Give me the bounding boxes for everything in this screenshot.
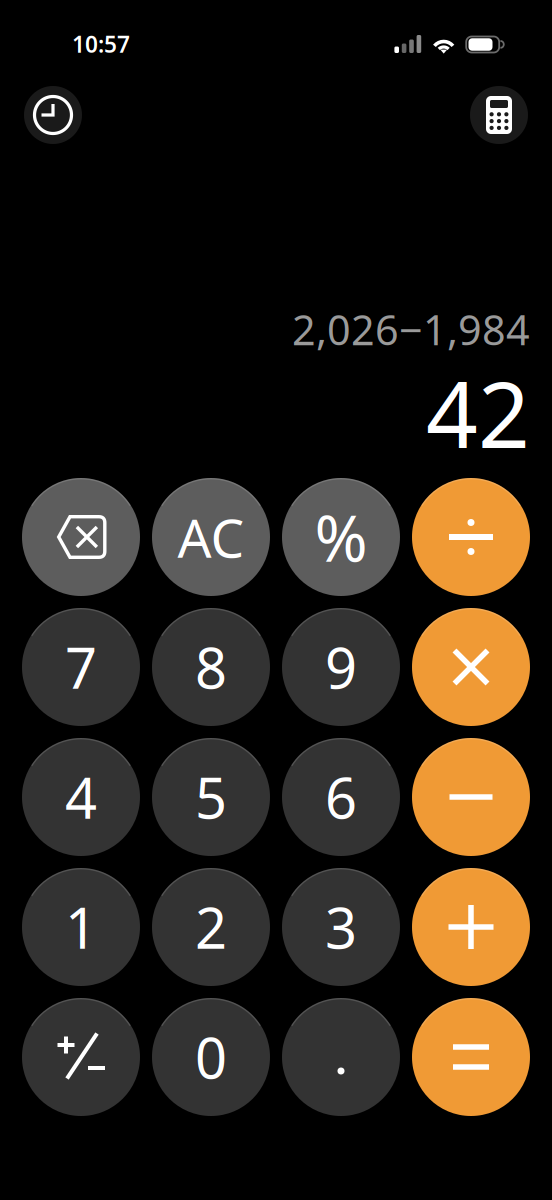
- staticText: 6: [325, 760, 357, 834]
- button[interactable]: 9: [282, 608, 400, 726]
- button[interactable]: 0: [152, 998, 270, 1116]
- button[interactable]: %: [282, 478, 400, 596]
- button[interactable]: 2: [152, 868, 270, 986]
- button[interactable]: 6: [282, 738, 400, 856]
- staticText: 0: [195, 1020, 227, 1094]
- button[interactable]: 3: [282, 868, 400, 986]
- staticText: 9: [325, 630, 357, 704]
- button[interactable]: [412, 998, 530, 1116]
- button[interactable]: [22, 478, 140, 596]
- button[interactable]: [22, 998, 140, 1116]
- staticText: 2: [195, 890, 227, 964]
- staticText: %: [314, 494, 367, 579]
- button[interactable]: [412, 608, 530, 726]
- staticText: AC: [177, 502, 244, 572]
- staticText: 3: [325, 890, 357, 964]
- button[interactable]: AC: [152, 478, 270, 596]
- button[interactable]: [412, 868, 530, 986]
- button[interactable]: 4: [22, 738, 140, 856]
- staticText: 10:57: [72, 29, 130, 59]
- staticText: 8: [195, 630, 227, 704]
- staticText: 4: [65, 760, 97, 834]
- button[interactable]: Calculator mode: [470, 86, 528, 144]
- staticText: 7: [65, 630, 97, 704]
- button[interactable]: History: [24, 86, 82, 144]
- staticText: 5: [195, 760, 227, 834]
- button[interactable]: 8: [152, 608, 270, 726]
- button[interactable]: [282, 998, 400, 1116]
- button[interactable]: 7: [22, 608, 140, 726]
- staticText: 2,026−1,984: [292, 302, 530, 357]
- button[interactable]: 5: [152, 738, 270, 856]
- staticText: 1: [65, 890, 97, 964]
- button[interactable]: 1: [22, 868, 140, 986]
- staticText: 42: [426, 353, 530, 473]
- button[interactable]: [412, 478, 530, 596]
- button[interactable]: [412, 738, 530, 856]
